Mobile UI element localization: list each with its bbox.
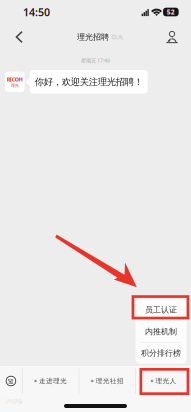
staticText: 员工认证 bbox=[145, 305, 177, 315]
button[interactable]: Keyboard bbox=[0, 366, 22, 396]
staticText: 理光人 bbox=[155, 377, 176, 385]
button[interactable]: 员工认证 bbox=[135, 299, 186, 320]
staticText: 14:50 bbox=[23, 5, 50, 19]
staticText: 52 bbox=[167, 8, 175, 16]
staticText: 星期五 17:46 bbox=[81, 57, 110, 64]
staticText: 理光招聘 bbox=[77, 32, 109, 42]
button[interactable]: Back bbox=[6, 24, 32, 50]
button[interactable]: Official account profile bbox=[159, 24, 185, 50]
staticText: 沪ICP备 bbox=[5, 398, 23, 405]
button[interactable]: 积分排行榜 bbox=[135, 343, 186, 364]
button[interactable]: 理光人 bbox=[136, 366, 191, 396]
button[interactable]: 内推机制 bbox=[135, 321, 186, 342]
staticText: 内推机制 bbox=[145, 327, 177, 336]
staticText: RICOH bbox=[7, 76, 23, 83]
staticText: 你好，欢迎关注理光招聘！ bbox=[35, 76, 143, 88]
staticText: 理光社招 bbox=[96, 377, 124, 385]
button[interactable]: 理光社招 bbox=[79, 366, 135, 396]
button[interactable]: 走进理光 bbox=[23, 366, 79, 396]
staticText: 走进理光 bbox=[39, 377, 67, 385]
staticText: 积分排行榜 bbox=[141, 348, 181, 358]
staticText: 理光 bbox=[11, 83, 19, 88]
